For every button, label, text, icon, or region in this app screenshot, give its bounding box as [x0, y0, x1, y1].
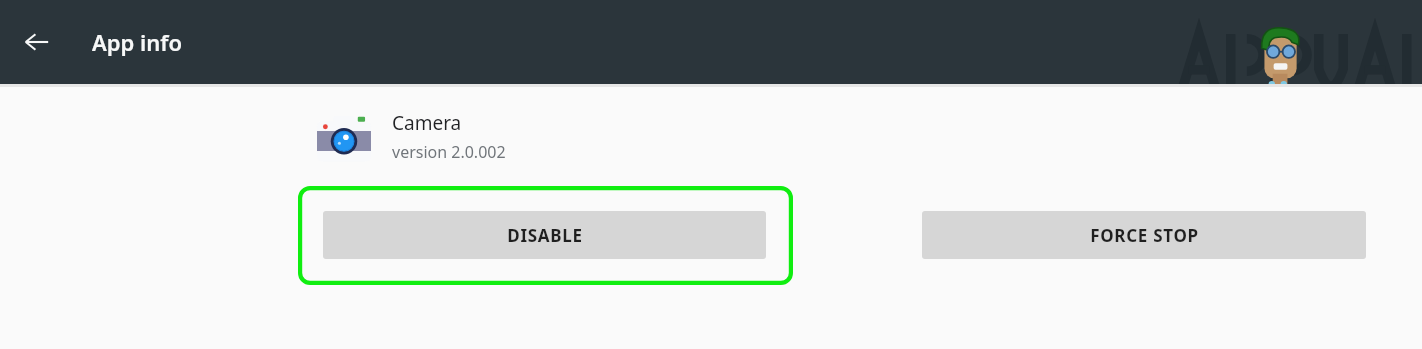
- staticText: Camera: [392, 110, 462, 136]
- button[interactable]: FORCE STOP: [922, 211, 1366, 259]
- button[interactable]: Camera: [317, 110, 506, 164]
- staticText: FORCE STOP: [1090, 224, 1199, 247]
- staticText: version 2.0.002: [392, 141, 506, 163]
- button[interactable]: DISABLE: [323, 211, 766, 259]
- staticText: DISABLE: [507, 224, 583, 247]
- button[interactable]: Navigate up: [14, 19, 60, 65]
- staticText: App info: [92, 27, 183, 57]
